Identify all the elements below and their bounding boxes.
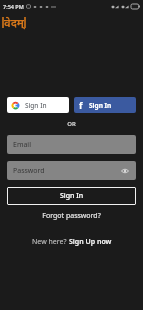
button[interactable]: Sign Up now [69, 237, 112, 247]
staticText: New here? [32, 237, 69, 247]
staticText: Sign In [89, 101, 112, 110]
staticText: f [79, 99, 83, 111]
button[interactable]: Forgot password? [0, 211, 143, 221]
button[interactable]: Google [7, 97, 69, 113]
button[interactable]: Password [7, 161, 136, 180]
staticText: Sign In [25, 101, 47, 110]
button[interactable]: f [74, 97, 136, 113]
button[interactable]: Sign In [7, 187, 136, 205]
staticText: OR [0, 120, 143, 128]
staticText: Sign In [60, 191, 84, 201]
staticText: 7:54 PM [3, 3, 24, 10]
staticText: Password [13, 166, 45, 176]
staticText: Email [13, 140, 31, 150]
other: Google [12, 102, 19, 109]
staticText: वेदम् [4, 15, 24, 30]
button[interactable]: Show password [120, 166, 130, 176]
button[interactable]: Email [7, 135, 136, 154]
